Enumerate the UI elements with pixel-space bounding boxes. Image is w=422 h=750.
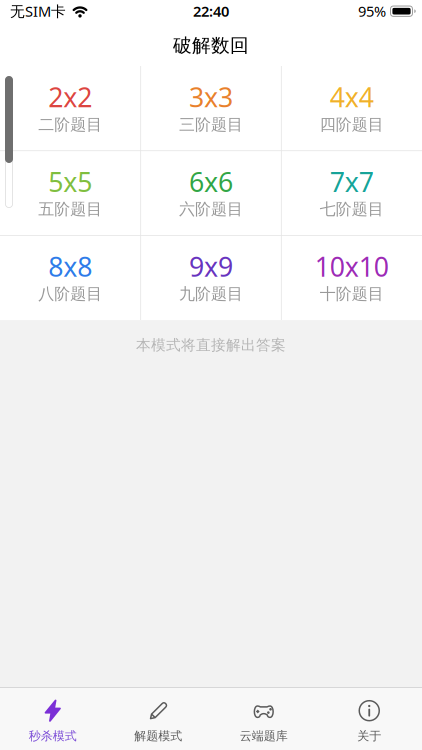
staticText: 9x9 [189,249,233,284]
staticText: 解题模式 [134,729,182,743]
staticText: 五阶题目 [38,199,102,219]
button[interactable]: 9x9 [141,235,281,320]
staticText: 95% [358,1,386,21]
staticText: 二阶题目 [38,115,102,134]
button[interactable]: 3x3 [141,66,281,151]
staticText: 云端题库 [240,729,288,743]
staticText: 8x8 [48,249,92,284]
staticText: 秒杀模式 [29,729,77,743]
staticText: 破解数回 [173,34,249,57]
staticText: 2x2 [48,79,92,115]
staticText: 四阶题目 [320,115,384,134]
button[interactable]: 8x8 [0,235,141,320]
staticText: 八阶题目 [38,284,102,304]
staticText: 3x3 [189,79,233,115]
staticText: 7x7 [330,164,374,199]
staticText: 十阶题目 [320,284,384,304]
staticText: 六阶题目 [179,199,243,219]
staticText: 三阶题目 [179,115,243,134]
staticText: 4x4 [330,79,374,115]
button[interactable]: 云端题库 [211,699,316,743]
button[interactable]: 7x7 [281,151,422,235]
button[interactable]: 6x6 [141,151,281,235]
staticText: 10x10 [315,249,389,284]
staticText: 6x6 [189,164,233,199]
button[interactable]: 解题模式 [105,699,211,743]
button[interactable]: 10x10 [281,235,422,320]
button[interactable]: 4x4 [281,66,422,151]
staticText: 九阶题目 [179,284,243,304]
button[interactable]: 2x2 [0,66,141,151]
staticText: 5x5 [48,164,92,199]
staticText: 22:40 [193,1,229,21]
button[interactable]: 秒杀模式 [0,699,105,743]
button[interactable]: 5x5 [0,151,141,235]
staticText: 本模式将直接解出答案 [136,336,286,354]
button[interactable]: 关于 [316,699,422,743]
staticText: 无SIM卡 [10,1,66,21]
staticText: 关于 [357,729,381,743]
staticText: 七阶题目 [320,199,384,219]
